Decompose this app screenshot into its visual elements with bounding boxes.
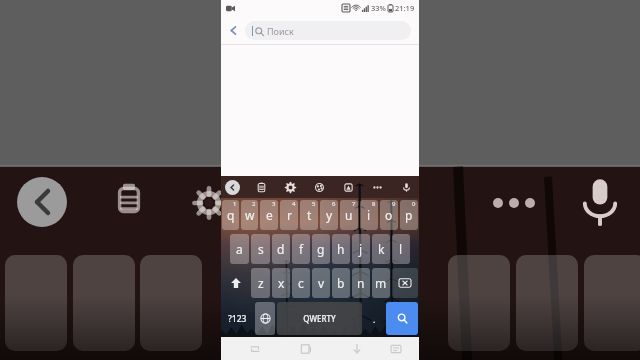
button[interactable]: v <box>312 268 330 298</box>
staticText: h <box>337 241 345 257</box>
button[interactable]: c <box>292 268 310 298</box>
button[interactable]: g <box>312 234 330 264</box>
staticText: 3 <box>272 200 276 208</box>
button[interactable]: j <box>352 234 370 264</box>
button[interactable]: d <box>272 234 290 264</box>
button[interactable]: Backspace <box>392 268 418 298</box>
staticText: l <box>399 241 403 257</box>
button[interactable]: Stickers <box>311 179 327 195</box>
staticText: c <box>298 275 304 291</box>
staticText: 6 <box>332 200 336 208</box>
staticText: y <box>326 207 333 223</box>
staticText: 5 <box>312 200 316 208</box>
staticText: . <box>373 313 376 325</box>
button[interactable]: More options <box>369 179 385 195</box>
staticText: u <box>345 207 353 223</box>
staticText: 33% <box>371 3 386 13</box>
button[interactable]: z <box>251 268 270 298</box>
button[interactable]: Back <box>225 180 240 195</box>
staticText: z <box>258 275 264 291</box>
staticText: 0 <box>412 200 416 208</box>
staticText: 1 <box>233 200 237 208</box>
button[interactable]: p <box>400 200 418 230</box>
staticText: 9 <box>392 200 396 208</box>
button[interactable]: Back <box>221 18 245 42</box>
staticText: 7 <box>352 200 356 208</box>
button[interactable]: a <box>230 234 249 264</box>
staticText: f <box>299 241 304 257</box>
staticText: 2 <box>252 200 256 208</box>
button[interactable]: s <box>251 234 270 264</box>
button[interactable]: r <box>280 200 298 230</box>
button[interactable]: t <box>300 200 318 230</box>
button[interactable]: n <box>352 268 370 298</box>
staticText: j <box>359 241 363 257</box>
staticText: w <box>245 207 255 223</box>
staticText: x <box>278 275 285 291</box>
staticText: Поиск <box>267 25 294 37</box>
staticText: e <box>266 207 273 223</box>
staticText: m <box>375 275 387 291</box>
staticText: t <box>307 207 312 223</box>
button[interactable]: Switch input method <box>244 338 266 360</box>
staticText: v <box>318 275 325 291</box>
button[interactable]: m <box>372 268 390 298</box>
button[interactable]: Shift <box>222 268 249 298</box>
button[interactable]: o <box>380 200 398 230</box>
button[interactable]: u <box>340 200 358 230</box>
button[interactable]: x <box>272 268 290 298</box>
staticText: i <box>367 207 371 223</box>
button[interactable]: Поиск <box>245 21 411 40</box>
button[interactable]: w <box>241 200 258 230</box>
staticText: r <box>287 207 292 223</box>
button[interactable]: Hide keyboard <box>346 338 368 360</box>
button[interactable]: Clipboard <box>253 179 269 195</box>
button[interactable]: l <box>392 234 410 264</box>
button[interactable]: k <box>372 234 390 264</box>
button[interactable]: Search <box>386 302 418 335</box>
button[interactable]: Change language <box>255 302 275 335</box>
button[interactable]: q <box>222 200 239 230</box>
staticText: ?123 <box>228 313 247 325</box>
button[interactable]: e <box>260 200 278 230</box>
button[interactable]: y <box>320 200 338 230</box>
button[interactable]: f <box>292 234 310 264</box>
staticText: k <box>378 241 385 257</box>
button[interactable]: . <box>364 302 384 335</box>
staticText: b <box>337 275 345 291</box>
staticText: n <box>357 275 365 291</box>
staticText: 8 <box>372 200 376 208</box>
staticText: g <box>317 241 325 257</box>
button[interactable]: Voice input <box>398 179 414 195</box>
button[interactable]: Settings <box>282 179 298 195</box>
button[interactable]: Recents <box>295 338 317 360</box>
staticText: s <box>258 241 264 257</box>
staticText: d <box>277 241 285 257</box>
button[interactable]: b <box>332 268 350 298</box>
staticText: 4 <box>292 200 296 208</box>
button[interactable]: QWERTY <box>277 302 362 335</box>
staticText: o <box>385 207 393 223</box>
button[interactable]: h <box>332 234 350 264</box>
staticText: p <box>405 207 413 223</box>
staticText: a <box>236 241 243 257</box>
button[interactable]: Translate <box>340 179 356 195</box>
staticText: q <box>227 207 235 223</box>
button[interactable]: Keyboard <box>385 338 407 360</box>
staticText: 21:19 <box>395 3 415 13</box>
button[interactable]: i <box>360 200 378 230</box>
staticText: QWERTY <box>303 313 336 324</box>
button[interactable]: ?123 <box>222 302 253 335</box>
